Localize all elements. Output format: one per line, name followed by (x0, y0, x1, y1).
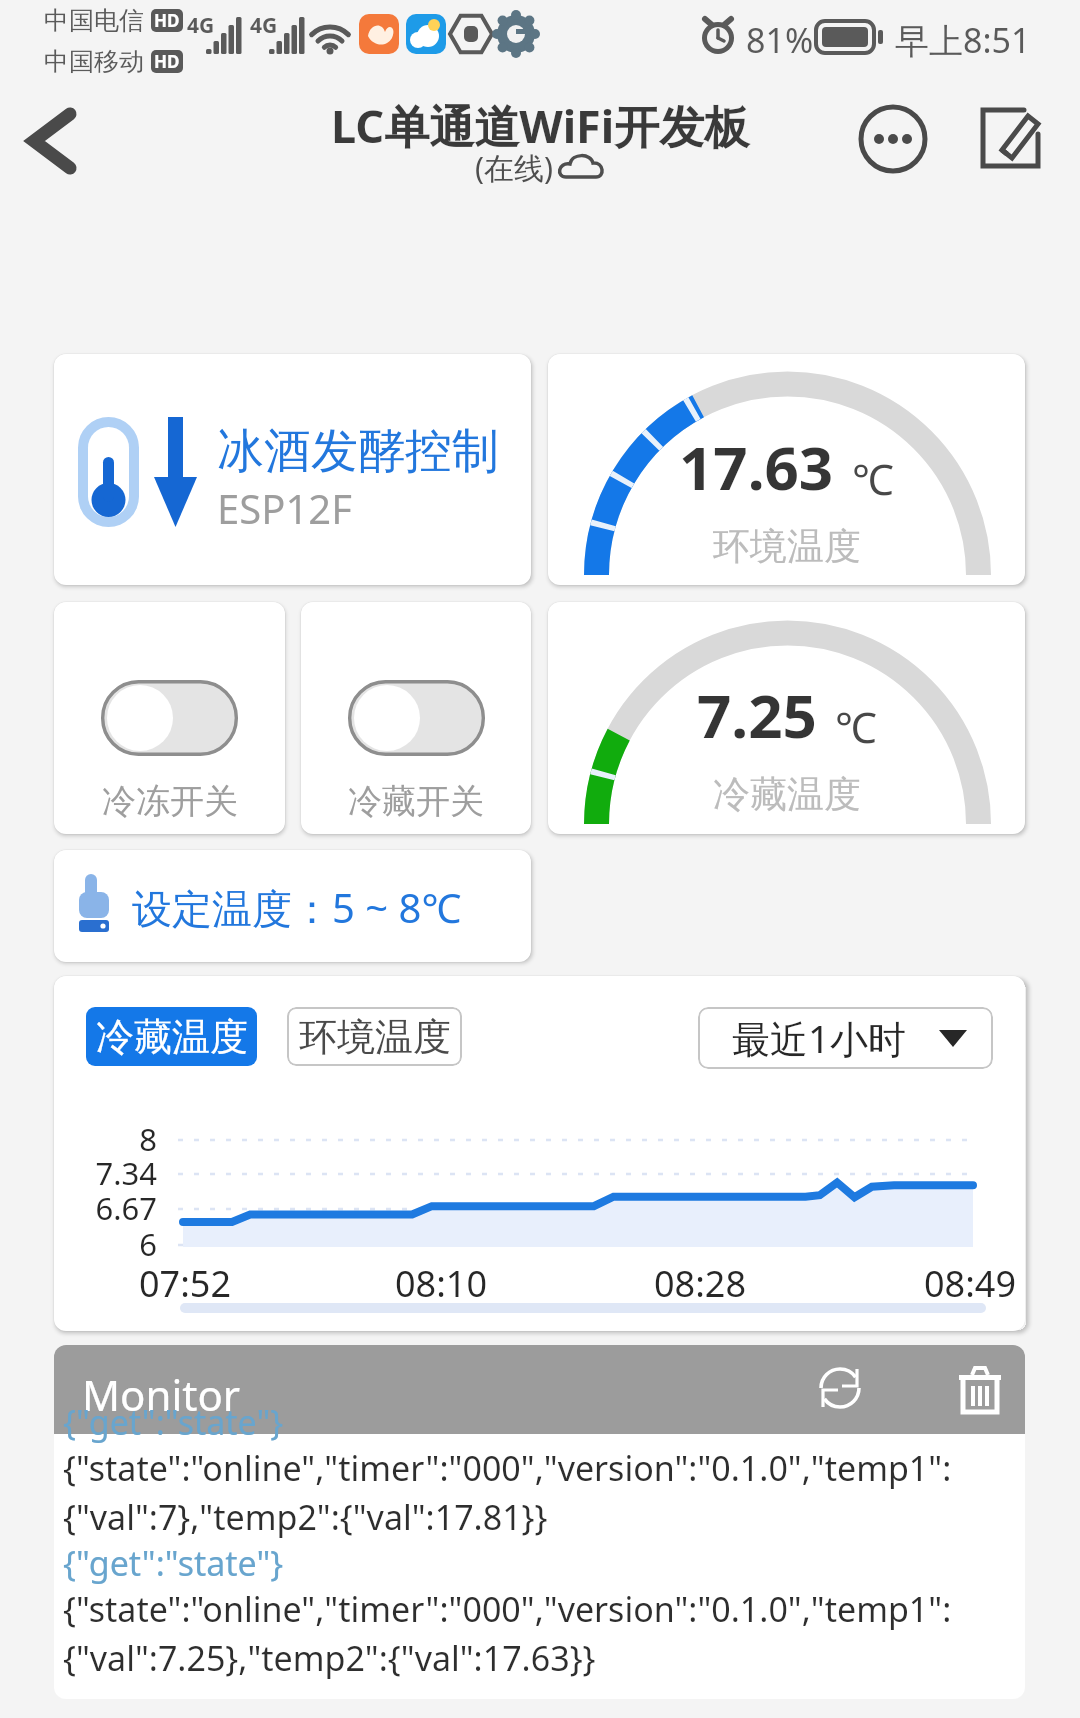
button[interactable]: 17.63 (548, 354, 1025, 585)
staticText: 08:49 (900, 1259, 1025, 1308)
button[interactable]: 环境温度 (287, 1007, 462, 1066)
staticText: 冷冻开关 (102, 780, 238, 823)
staticText: ESP12F (217, 481, 352, 535)
staticText: 冷藏温度 (713, 771, 861, 818)
staticText: 冷藏温度 (96, 1013, 248, 1061)
staticText: 08:28 (630, 1259, 770, 1308)
staticText: {"state":"online","timer":"000","version… (63, 1445, 952, 1540)
staticText: 4G (250, 11, 278, 40)
button[interactable]: Edit (956, 84, 1066, 194)
staticText: {"get":"state"} (63, 1399, 284, 1445)
staticText: (在线) (475, 147, 553, 188)
staticText: 6 (57, 1223, 157, 1265)
staticText: 7.25 (697, 674, 817, 756)
staticText: LC单通道WiFi开发板 (331, 95, 750, 156)
staticText: ℃ (852, 450, 894, 507)
staticText: 6.67 (57, 1187, 157, 1229)
staticText: 17.63 (679, 426, 834, 508)
button[interactable]: 设定温度：5 ~ 8℃ (54, 850, 531, 962)
staticText: 81% (746, 17, 814, 63)
button[interactable]: Back (0, 76, 110, 206)
staticText: 环境温度 (713, 523, 861, 570)
button[interactable]: 冷藏温度 (86, 1007, 257, 1066)
staticText: 设定温度：5 ~ 8℃ (132, 880, 462, 935)
staticText: 7.34 (57, 1152, 157, 1194)
button[interactable]: 冷藏温度 (54, 976, 1025, 1331)
button[interactable]: 冰酒发酵控制 (54, 354, 531, 585)
staticText: 07:52 (115, 1259, 255, 1308)
staticText: 最近1小时 (732, 1012, 906, 1064)
staticText: 冷藏开关 (348, 780, 484, 823)
staticText: 中国移动 (44, 46, 144, 77)
staticText: 4G (187, 11, 215, 40)
button[interactable]: 冷藏开关 (301, 602, 531, 834)
staticText: 冰酒发酵控制 (217, 422, 499, 481)
button[interactable]: 冷藏开关 (348, 680, 485, 756)
button[interactable]: Delete (945, 1355, 1015, 1425)
staticText: {"state":"online","timer":"000","version… (63, 1586, 952, 1681)
button[interactable]: 冷冻开关 (101, 680, 238, 756)
staticText: 环境温度 (299, 1013, 451, 1061)
button[interactable]: 冷冻开关 (54, 602, 285, 834)
staticText: 8 (57, 1118, 157, 1160)
button[interactable]: Refresh (805, 1354, 875, 1424)
staticText: 08:10 (371, 1259, 511, 1308)
staticText: HD (154, 50, 180, 73)
staticText: 早上8:51 (895, 17, 1031, 63)
button[interactable]: More options (838, 84, 948, 194)
staticText: 中国电信 (44, 5, 144, 36)
button[interactable]: 最近1小时 (698, 1007, 993, 1069)
staticText: ℃ (835, 698, 877, 755)
staticText: Monitor (82, 1366, 241, 1423)
staticText: {"get":"state"} (63, 1540, 284, 1586)
button[interactable]: 7.25 (548, 602, 1025, 834)
staticText: HD (154, 9, 180, 32)
